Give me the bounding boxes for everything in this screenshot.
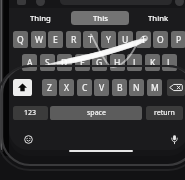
- button[interactable]: Think: [129, 8, 185, 28]
- button[interactable]: T: [83, 31, 98, 48]
- staticText: S: [45, 57, 50, 69]
- button[interactable]: This: [71, 11, 129, 25]
- staticText: U: [122, 34, 129, 46]
- button[interactable]: V: [94, 79, 109, 96]
- button[interactable]: O: [153, 31, 168, 48]
- staticText: I: [142, 34, 145, 46]
- button[interactable]: J: [127, 54, 142, 71]
- staticText: space: [87, 108, 106, 118]
- staticText: D: [61, 57, 68, 69]
- button[interactable]: H: [110, 54, 125, 71]
- staticText: Y: [106, 34, 111, 46]
- button[interactable]: S: [40, 54, 55, 71]
- button[interactable]: P: [171, 31, 185, 48]
- button[interactable]: Z: [42, 79, 57, 96]
- staticText: This: [93, 13, 108, 24]
- button[interactable]: N: [129, 79, 144, 96]
- button[interactable]: C: [77, 79, 92, 96]
- staticText: N: [133, 82, 140, 94]
- button[interactable]: space: [50, 106, 142, 120]
- button[interactable]: Dictation: [166, 131, 183, 148]
- staticText: O: [157, 34, 164, 46]
- button[interactable]: 123: [13, 106, 48, 120]
- button[interactable]: Emoji: [20, 131, 37, 148]
- staticText: 123: [24, 108, 37, 118]
- button[interactable]: A: [22, 54, 37, 71]
- staticText: H: [114, 57, 121, 69]
- button[interactable]: I: [136, 31, 151, 48]
- staticText: W: [35, 34, 43, 46]
- button[interactable]: E: [48, 31, 63, 48]
- button[interactable]: Thing: [11, 8, 70, 28]
- button[interactable]: F: [75, 54, 90, 71]
- button[interactable]: G: [92, 54, 107, 71]
- button[interactable]: Q: [13, 31, 28, 48]
- staticText: T: [88, 34, 93, 46]
- staticText: C: [82, 82, 88, 94]
- staticText: Thing: [30, 13, 51, 24]
- button[interactable]: Y: [101, 31, 116, 48]
- staticText: B: [117, 82, 123, 94]
- staticText: Z: [47, 82, 52, 94]
- button[interactable]: L: [162, 54, 177, 71]
- button[interactable]: return: [146, 106, 183, 120]
- button[interactable]: X: [59, 79, 74, 96]
- staticText: K: [150, 57, 156, 69]
- staticText: G: [96, 57, 103, 69]
- staticText: P: [176, 34, 182, 46]
- button[interactable]: D: [57, 54, 72, 71]
- button[interactable]: K: [145, 54, 160, 71]
- staticText: E: [53, 34, 58, 46]
- staticText: M: [151, 82, 159, 94]
- button[interactable]: B: [112, 79, 127, 96]
- staticText: F: [80, 57, 85, 69]
- staticText: V: [99, 82, 105, 94]
- button[interactable]: M: [147, 79, 162, 96]
- staticText: A: [27, 57, 33, 69]
- staticText: J: [133, 57, 136, 69]
- staticText: Think: [148, 13, 169, 24]
- button[interactable]: Shift: [13, 79, 32, 96]
- button[interactable]: W: [31, 31, 46, 48]
- button[interactable]: R: [66, 31, 81, 48]
- staticText: X: [64, 82, 70, 94]
- button[interactable]: Backspace: [167, 79, 185, 96]
- staticText: R: [71, 34, 77, 46]
- staticText: L: [167, 57, 172, 69]
- staticText: Q: [17, 34, 24, 46]
- button[interactable]: U: [118, 31, 133, 48]
- staticText: return: [154, 108, 175, 118]
